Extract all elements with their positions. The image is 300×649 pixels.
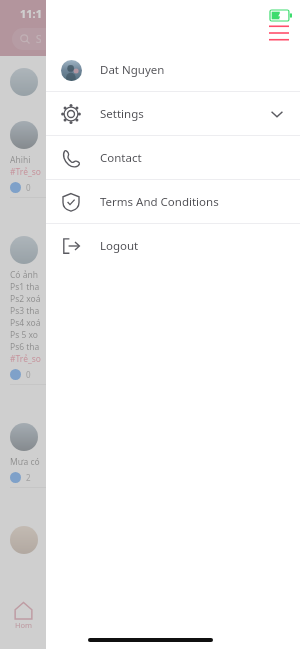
- staticText: 11:1: [20, 6, 42, 21]
- staticText: Ps4 xoá: [10, 317, 41, 329]
- staticText: Contact: [100, 150, 286, 166]
- staticText: #Trẻ_so: [10, 353, 41, 365]
- staticText: Mưa có: [10, 456, 40, 468]
- staticText: 0: [26, 182, 31, 193]
- staticText: 0: [26, 369, 31, 380]
- staticText: Ps 5 xo: [10, 329, 38, 341]
- staticText: S: [36, 32, 42, 46]
- staticText: Logout: [100, 238, 286, 254]
- button[interactable]: Dat Nguyen: [46, 48, 300, 91]
- staticText: 2: [26, 472, 31, 483]
- button[interactable]: Terms And Conditions: [46, 180, 300, 223]
- staticText: Ahihi: [10, 154, 31, 166]
- staticText: Ps3 tha: [10, 305, 40, 317]
- button[interactable]: Contact: [46, 136, 300, 179]
- staticText: Terms And Conditions: [100, 194, 286, 210]
- staticText: Dat Nguyen: [100, 62, 286, 78]
- staticText: Có ảnh: [10, 269, 38, 281]
- staticText: #Trẻ_so: [10, 166, 41, 178]
- button[interactable]: Logout: [46, 224, 300, 267]
- staticText: Settings: [100, 106, 268, 122]
- staticText: Ps6 tha: [10, 341, 40, 353]
- staticText: Ps1 tha: [10, 281, 40, 293]
- button[interactable]: Settings: [46, 92, 300, 135]
- staticText: Hom: [15, 620, 33, 630]
- button[interactable]: Menu: [266, 22, 292, 44]
- staticText: Ps2 xoá: [10, 293, 41, 305]
